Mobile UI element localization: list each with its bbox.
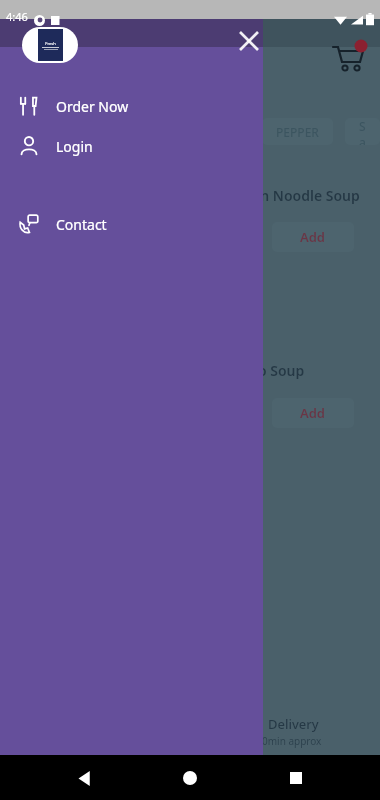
staticText: Contact	[56, 215, 107, 234]
staticText: 0min approx	[262, 734, 322, 748]
staticText: Order Now	[56, 97, 129, 116]
button[interactable]: Order Now	[0, 85, 263, 127]
button[interactable]: Add	[272, 398, 354, 428]
button[interactable]: Close menu	[229, 21, 269, 61]
button[interactable]: Logo	[22, 27, 78, 63]
staticText: Add	[300, 404, 326, 422]
button[interactable]: PEPPER	[262, 118, 333, 145]
staticText: Add	[300, 228, 326, 246]
staticText: Fresh	[45, 41, 56, 46]
staticText: Chicken Noodle Soup	[215, 186, 360, 205]
button[interactable]: Add	[272, 222, 354, 252]
button[interactable]: Contact	[0, 203, 263, 245]
button[interactable]: Login	[0, 125, 263, 167]
button[interactable]: Home	[168, 756, 212, 800]
staticText: PEPPER	[276, 124, 319, 140]
staticText: Login	[56, 137, 93, 156]
staticText: Salt	[359, 118, 366, 145]
staticText: Delivery	[268, 715, 319, 733]
button[interactable]: Recent apps	[274, 756, 318, 800]
staticText: Tomato Soup	[215, 361, 305, 380]
button[interactable]: Back	[62, 756, 106, 800]
button[interactable]: Cart	[330, 40, 370, 80]
staticText: 4:46	[6, 9, 28, 24]
